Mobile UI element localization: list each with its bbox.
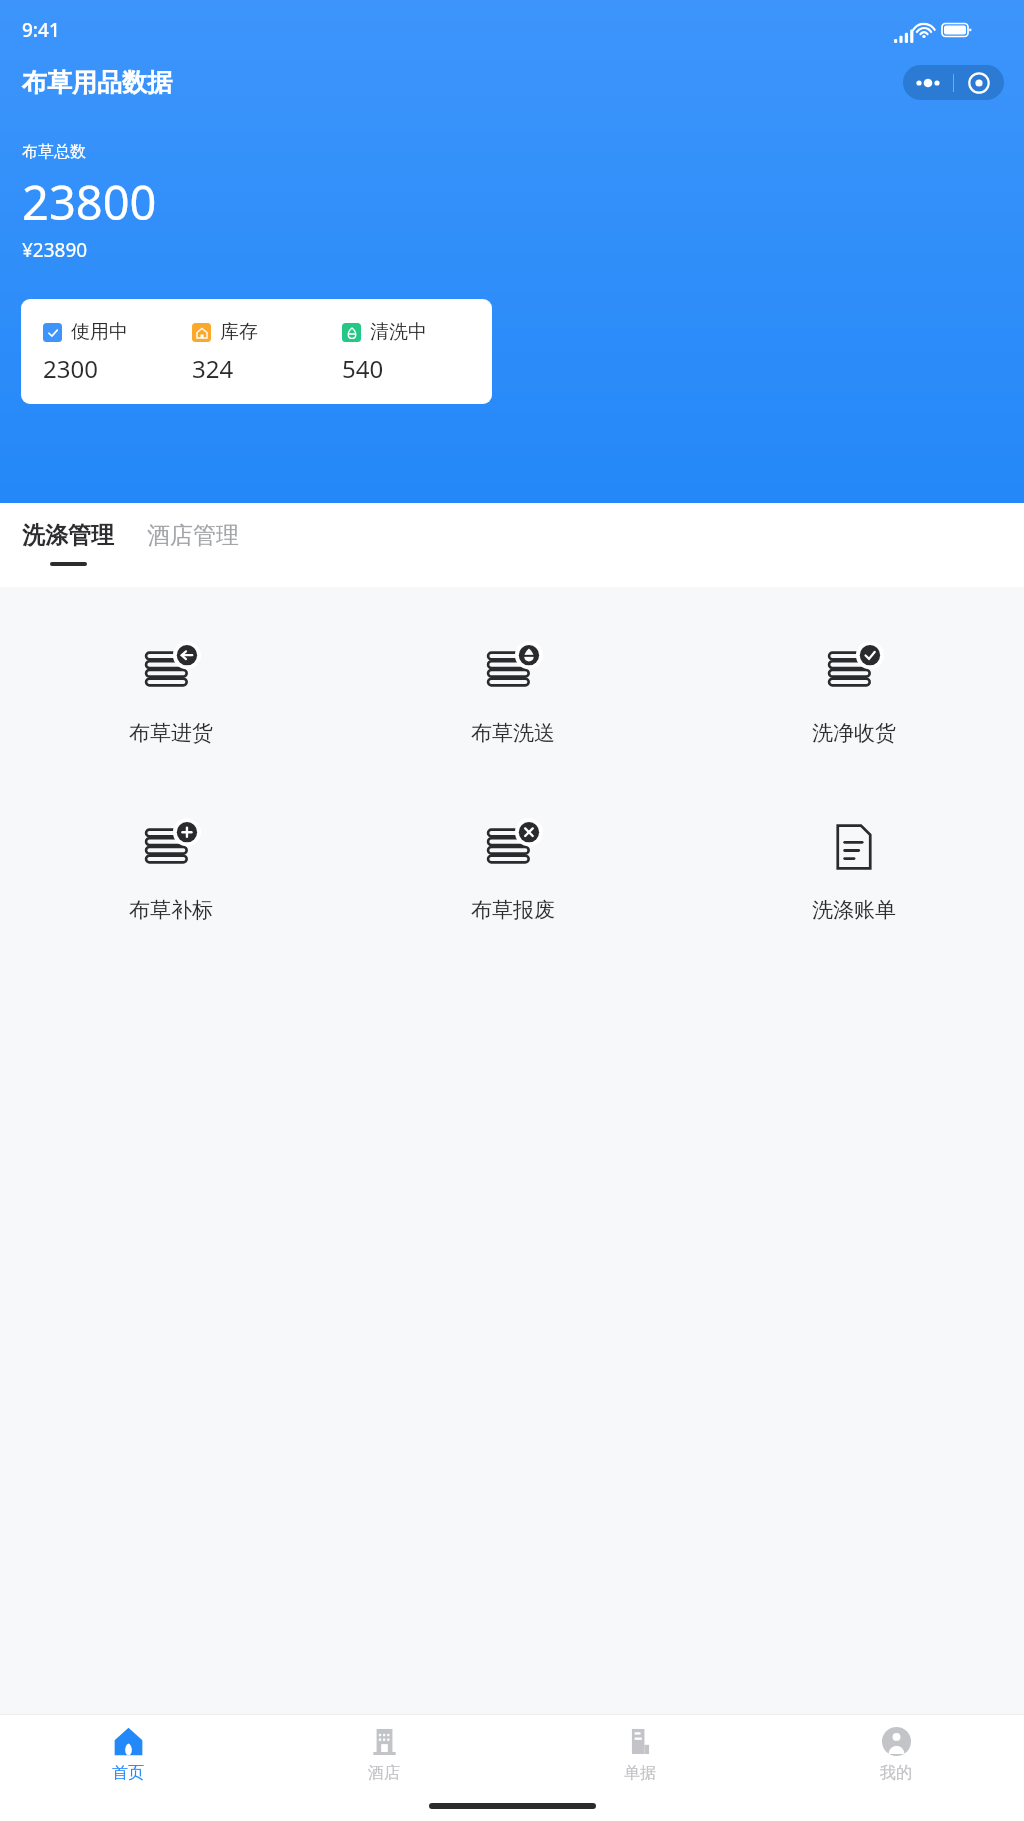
button[interactable]: 布草补标 xyxy=(0,816,342,923)
staticText: 酒店 xyxy=(368,1763,400,1783)
staticText: 酒店管理 xyxy=(147,521,239,550)
button[interactable]: 单据 xyxy=(512,1715,768,1791)
staticText: 布草洗送 xyxy=(471,720,555,746)
staticText: 库存 xyxy=(220,320,258,344)
staticText: 布草用品数据 xyxy=(22,67,172,98)
button[interactable]: 首页 xyxy=(0,1715,256,1791)
button[interactable]: 酒店 xyxy=(256,1715,512,1791)
staticText: 布草总数 xyxy=(22,142,86,162)
button[interactable]: More options and close xyxy=(903,65,1004,100)
button[interactable]: 布草进货 xyxy=(0,639,342,746)
staticText: 首页 xyxy=(112,1763,144,1783)
staticText: 我的 xyxy=(880,1763,912,1783)
staticText: 9:41 xyxy=(22,17,60,43)
button[interactable]: 使用中 xyxy=(43,320,192,385)
button[interactable]: 清洗中 xyxy=(342,320,492,385)
staticText: 使用中 xyxy=(71,320,128,344)
staticText: 单据 xyxy=(624,1763,656,1783)
staticText: 23800 xyxy=(22,170,157,234)
staticText: ¥23890 xyxy=(22,237,88,263)
button[interactable]: 酒店管理 xyxy=(147,521,239,550)
button[interactable]: 洗涤账单 xyxy=(683,816,1024,923)
button[interactable]: 库存 xyxy=(192,320,342,385)
staticText: 洗涤管理 xyxy=(22,521,114,550)
staticText: 洗涤账单 xyxy=(812,897,896,923)
staticText: 清洗中 xyxy=(370,320,427,344)
staticText: 2300 xyxy=(43,352,98,385)
button[interactable]: 洗净收货 xyxy=(683,639,1024,746)
staticText: 324 xyxy=(192,352,234,385)
button[interactable]: 布草报废 xyxy=(342,816,683,923)
staticText: 布草报废 xyxy=(471,897,555,923)
button[interactable]: 洗涤管理 xyxy=(22,521,114,566)
button[interactable]: 布草洗送 xyxy=(342,639,683,746)
staticText: 540 xyxy=(342,352,384,385)
staticText: 洗净收货 xyxy=(812,720,896,746)
button[interactable]: 我的 xyxy=(768,1715,1024,1791)
staticText: 布草补标 xyxy=(129,897,213,923)
staticText: 布草进货 xyxy=(129,720,213,746)
